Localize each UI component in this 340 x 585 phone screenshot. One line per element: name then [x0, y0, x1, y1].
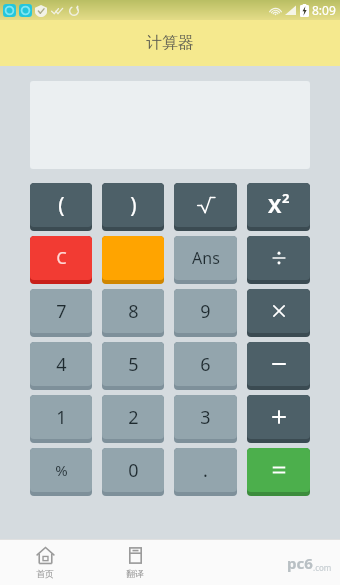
staticText: . [203, 458, 208, 483]
button[interactable]: % [30, 448, 92, 496]
staticText: 5 [128, 352, 139, 377]
button[interactable]: 8 [102, 289, 164, 337]
button[interactable]: 1 [30, 395, 92, 443]
staticText: ( [58, 191, 65, 220]
button[interactable]: 4 [30, 342, 92, 390]
button[interactable]: Divide [247, 236, 310, 284]
staticText: 2 [128, 405, 139, 430]
staticText: 2 [282, 189, 290, 207]
button[interactable]: C [30, 236, 92, 284]
staticText: 首页 [36, 568, 54, 579]
staticText: ) [130, 191, 137, 220]
staticText: 3 [200, 405, 211, 430]
button[interactable]: Add [247, 395, 310, 443]
button[interactable]: Backspace [102, 236, 164, 284]
staticText: 0 [128, 458, 139, 483]
staticText: 1 [56, 405, 67, 430]
button[interactable]: Ans [174, 236, 237, 284]
button[interactable]: Equals [247, 448, 310, 496]
button[interactable]: 2 [102, 395, 164, 443]
staticText: C [56, 247, 67, 269]
staticText: 计算器 [146, 33, 194, 53]
button[interactable]: 翻译 [90, 540, 180, 585]
button[interactable]: Square [247, 183, 310, 231]
staticText: X [268, 192, 282, 219]
button[interactable]: 9 [174, 289, 237, 337]
staticText: 翻译 [126, 568, 144, 579]
staticText: pc6 [287, 553, 313, 573]
staticText: 6 [200, 352, 211, 377]
button[interactable]: ( [30, 183, 92, 231]
staticText: 8 [128, 299, 139, 324]
button[interactable]: Multiply [247, 289, 310, 337]
staticText: .com [313, 562, 332, 573]
button[interactable]: 7 [30, 289, 92, 337]
button[interactable]: Square root [174, 183, 237, 231]
button[interactable]: . [174, 448, 237, 496]
staticText: % [55, 460, 68, 480]
staticText: Ans [192, 247, 220, 269]
button[interactable]: 5 [102, 342, 164, 390]
button[interactable]: 6 [174, 342, 237, 390]
button[interactable]: ) [102, 183, 164, 231]
button[interactable]: 3 [174, 395, 237, 443]
staticText: 7 [56, 299, 67, 324]
button[interactable]: 首页 [0, 540, 90, 585]
button[interactable]: 0 [102, 448, 164, 496]
button[interactable]: Subtract [247, 342, 310, 390]
staticText: 4 [56, 352, 67, 377]
staticText: 8:09 [312, 2, 336, 18]
staticText: 9 [200, 299, 211, 324]
